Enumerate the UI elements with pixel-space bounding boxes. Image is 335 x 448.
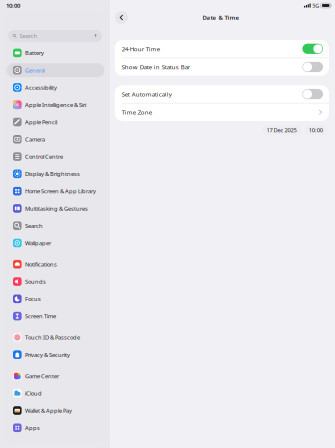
button[interactable]: Camera: [7, 132, 104, 146]
staticText: Accessibility: [25, 84, 57, 91]
staticText: 10:00: [6, 1, 20, 10]
staticText: Search: [20, 32, 38, 40]
button[interactable]: Apps: [7, 421, 104, 435]
staticText: Battery: [25, 49, 44, 57]
staticText: 10:00: [309, 126, 323, 134]
staticText: Search: [25, 222, 43, 230]
button[interactable]: 24-Hour Time: [115, 40, 329, 58]
staticText: 17 Dec 2025: [267, 126, 297, 134]
staticText: Privacy & Security: [25, 351, 70, 359]
button[interactable]: Multitasking & Gestures: [7, 201, 104, 215]
button[interactable]: General: [7, 63, 104, 77]
staticText: Focus: [25, 295, 41, 303]
staticText: Date & Time: [202, 13, 239, 22]
button[interactable]: Touch ID & Passcode: [7, 330, 104, 344]
button[interactable]: Search: [7, 219, 104, 233]
button[interactable]: 10:00: [305, 125, 327, 135]
button[interactable]: iCloud: [7, 386, 104, 400]
button[interactable]: Apple Intelligence & Siri: [7, 98, 104, 112]
button[interactable]: Privacy & Security: [7, 348, 104, 362]
button[interactable]: Time Zone: [115, 103, 329, 121]
staticText: Show Date in Status Bar: [122, 63, 190, 71]
staticText: 5G: [312, 2, 319, 9]
button[interactable]: Apple Pencil: [7, 115, 104, 129]
staticText: Notifications: [25, 260, 57, 268]
staticText: Apps: [25, 424, 40, 432]
button[interactable]: Back: [115, 11, 128, 24]
button[interactable]: Accessibility: [7, 80, 104, 94]
button[interactable]: Display & Brightness: [7, 167, 104, 181]
button[interactable]: Notifications: [7, 257, 104, 271]
staticText: Multitasking & Gestures: [25, 204, 88, 212]
button[interactable]: 17 Dec 2025: [262, 125, 302, 135]
staticText: Display & Brightness: [25, 170, 80, 178]
staticText: Screen Time: [25, 312, 56, 320]
staticText: Home Screen & App Library: [25, 187, 96, 195]
staticText: 24-Hour Time: [122, 45, 160, 53]
button[interactable]: Focus: [7, 292, 104, 306]
staticText: Apple Intelligence & Siri: [25, 101, 86, 109]
staticText: Control Centre: [25, 153, 63, 160]
staticText: Camera: [25, 135, 45, 143]
button[interactable]: Show Date in Status Bar: [115, 58, 329, 76]
button[interactable]: Home Screen & App Library: [7, 184, 104, 198]
button[interactable]: Control Centre: [7, 150, 104, 164]
button[interactable]: Game Center: [7, 369, 104, 383]
button[interactable]: Wallpaper: [7, 236, 104, 250]
staticText: General: [25, 66, 45, 74]
staticText: Wallpaper: [25, 239, 51, 247]
button[interactable]: Wallet & Apple Pay: [7, 403, 104, 417]
staticText: Sounds: [25, 278, 46, 285]
button[interactable]: Sounds: [7, 274, 104, 288]
button[interactable]: Battery: [7, 46, 104, 60]
staticText: Time Zone: [122, 108, 152, 116]
button[interactable]: Screen Time: [7, 309, 104, 323]
staticText: iCloud: [25, 389, 42, 397]
staticText: Apple Pencil: [25, 118, 57, 126]
staticText: Touch ID & Passcode: [25, 333, 80, 341]
staticText: Game Center: [25, 372, 59, 380]
staticText: Set Automatically: [122, 90, 172, 98]
staticText: Wallet & Apple Pay: [25, 407, 72, 414]
button[interactable]: Set Automatically: [115, 85, 329, 103]
